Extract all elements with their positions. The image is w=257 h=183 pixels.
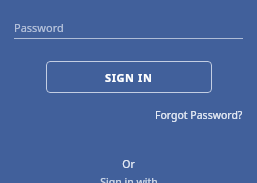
button[interactable]: Password: [14, 20, 243, 39]
button[interactable]: Forgot Password?: [140, 106, 243, 124]
button[interactable]: SIGN IN: [46, 61, 212, 93]
button[interactable]: Sign in with other account: [0, 175, 257, 183]
staticText: Forgot Password?: [155, 108, 243, 122]
staticText: SIGN IN: [105, 70, 153, 85]
staticText: Password: [14, 20, 64, 35]
staticText: Sign in with: [100, 175, 158, 183]
staticText: Or: [122, 157, 135, 171]
